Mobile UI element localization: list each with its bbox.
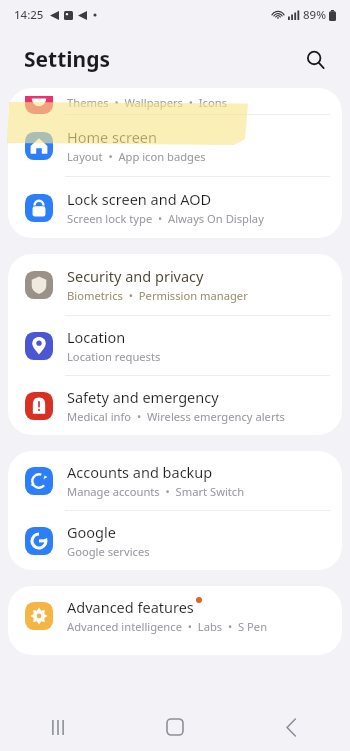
staticText: Google services: [67, 544, 150, 559]
button[interactable]: Home: [116, 703, 233, 751]
staticText: Medical info • Wireless emergency alerts: [67, 409, 285, 424]
button[interactable]: Accounts and backup: [8, 451, 342, 510]
button[interactable]: Security and privacy: [8, 254, 342, 315]
staticText: Layout • App icon badges: [67, 149, 206, 164]
staticText: Location: [67, 327, 126, 347]
staticText: Settings: [24, 45, 111, 74]
staticText: Manage accounts • Smart Switch: [67, 484, 245, 499]
staticText: Google: [67, 522, 116, 542]
staticText: Accounts and backup: [67, 462, 213, 482]
staticText: Advanced intelligence • Labs • S Pen: [67, 619, 268, 634]
button[interactable]: Search: [298, 42, 332, 76]
button[interactable]: Themes • Wallpapers • Icons: [8, 88, 342, 114]
button[interactable]: Home screen: [8, 115, 342, 176]
staticText: 14:25: [14, 7, 44, 23]
button[interactable]: Recents: [0, 703, 116, 751]
staticText: Security and privacy: [67, 266, 204, 286]
staticText: Biometrics • Permission manager: [67, 288, 248, 303]
staticText: Lock screen and AOD: [67, 189, 212, 209]
staticText: Safety and emergency: [67, 387, 219, 407]
staticText: Screen lock type • Always On Display: [67, 211, 264, 226]
staticText: 89%: [303, 7, 326, 23]
button[interactable]: Google: [8, 511, 342, 570]
button[interactable]: Location: [8, 316, 342, 375]
staticText: Home screen: [67, 127, 157, 147]
button[interactable]: Back: [233, 703, 350, 751]
button[interactable]: Safety and emergency: [8, 376, 342, 435]
staticText: Advanced features: [67, 597, 194, 617]
staticText: Location requests: [67, 349, 161, 364]
staticText: Themes • Wallpapers • Icons: [67, 95, 228, 110]
button[interactable]: Lock screen and AOD: [8, 177, 342, 238]
button[interactable]: Advanced features: [8, 586, 342, 645]
